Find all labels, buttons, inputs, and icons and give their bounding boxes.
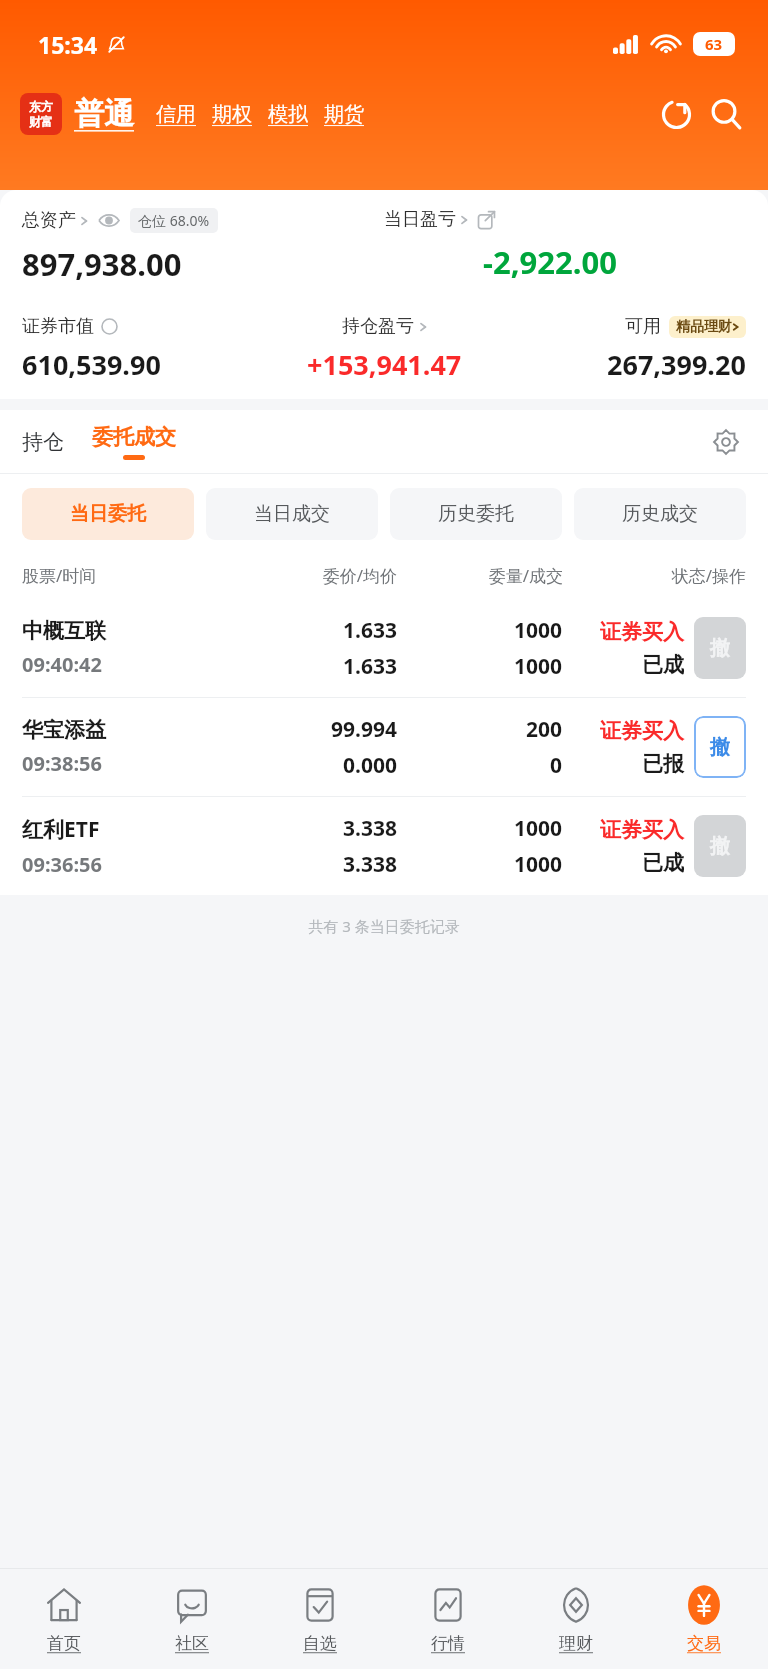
staticText: 华宝添益 [22,717,106,743]
staticText: 1000 [514,652,563,681]
button[interactable]: 自选 [256,1569,384,1669]
staticText: 15:34 [38,29,98,60]
staticText: +153,941.47 [307,346,462,383]
button[interactable]: 精品理财 [676,318,739,336]
button[interactable]: 委托成交 [92,424,176,460]
button[interactable]: 期货 [316,102,372,127]
staticText: 0 [550,751,563,780]
staticText: 1000 [514,814,563,843]
button[interactable]: 当日盈亏 [384,208,495,231]
button[interactable]: 中概互联 [22,599,746,697]
button[interactable]: 仓位 68.0% [138,211,210,230]
staticText: 行情 [431,1633,465,1654]
staticText: 持仓 [22,429,64,455]
staticText: 3.338 [343,814,397,843]
button[interactable]: 持仓 [22,423,64,461]
staticText: 社区 [175,1633,209,1654]
staticText: 理财 [559,1633,593,1654]
staticText: 09:36:56 [22,851,102,878]
button[interactable]: 历史成交 [574,488,746,540]
staticText: 3.338 [343,850,397,879]
staticText: 610,539.90 [22,346,161,383]
staticText: 东方 [29,99,53,114]
staticText: 信用 [156,102,196,127]
staticText: 证券买入 [600,817,684,843]
staticText: 0.000 [343,751,397,780]
staticText: 证券市值 [22,315,94,338]
staticText: 持仓盈亏 [342,315,414,338]
button[interactable]: 撤 [694,716,746,778]
staticText: 首页 [47,1633,81,1654]
staticText: 证券买入 [600,619,684,645]
button[interactable]: 行情 [384,1569,512,1669]
button[interactable]: 理财 [512,1569,640,1669]
button[interactable]: 撤 [694,815,746,877]
button[interactable]: 首页 [0,1569,128,1669]
staticText: 已报 [642,751,684,777]
staticText: 63 [705,34,723,54]
staticText: 历史委托 [438,502,514,526]
staticText: -2,922.00 [384,241,716,283]
staticText: 当日成交 [254,502,330,526]
staticText: 撤 [710,636,730,661]
staticText: 200 [526,715,563,744]
staticText: 委价/均价 [231,564,397,587]
staticText: 897,938.00 [22,243,182,285]
staticText: 状态/操作 [563,564,746,587]
button[interactable]: Refresh [654,92,698,136]
staticText: 当日盈亏 [384,208,456,231]
button[interactable]: 红利ETF [22,797,746,895]
button[interactable]: 华宝添益 [22,698,746,796]
button[interactable]: 模拟 [260,102,316,127]
button[interactable]: Settings [706,422,746,462]
staticText: 普通 [74,95,134,133]
staticText: 期货 [324,102,364,127]
button[interactable]: 总资产 [22,208,218,233]
staticText: 共有 3 条当日委托记录 [0,916,768,936]
staticText: 1000 [514,850,563,879]
staticText: 撤 [710,735,730,760]
button[interactable]: 持仓盈亏 [342,315,427,338]
staticText: 期权 [212,102,252,127]
button[interactable]: Search [704,92,748,136]
staticText: 财富 [29,114,53,129]
staticText: 仓位 68.0% [138,211,210,230]
button[interactable]: 历史委托 [390,488,562,540]
staticText: 当日委托 [70,502,146,526]
staticText: 交易 [687,1633,721,1654]
staticText: 09:38:56 [22,750,102,777]
staticText: 中概互联 [22,618,106,644]
staticText: 证券买入 [600,718,684,744]
staticText: 委量/成交 [397,564,563,587]
staticText: 股票/时间 [22,564,231,587]
staticText: 历史成交 [622,502,698,526]
staticText: 委托成交 [92,424,176,450]
staticText: 自选 [303,1633,337,1654]
staticText: 1000 [514,616,563,645]
staticText: 模拟 [268,102,308,127]
staticText: 已成 [642,850,684,876]
button[interactable]: 普通 [74,95,134,133]
staticText: 1.633 [343,652,397,681]
button[interactable]: 社区 [128,1569,256,1669]
staticText: 09:40:42 [22,651,102,678]
staticText: 已成 [642,652,684,678]
button[interactable]: 期权 [204,102,260,127]
button[interactable]: 信用 [148,102,204,127]
staticText: 撤 [710,834,730,859]
staticText: 可用 [625,315,661,338]
staticText: 红利ETF [22,815,100,844]
staticText: 267,399.20 [607,346,746,383]
staticText: 总资产 [22,209,76,232]
button[interactable]: 当日成交 [206,488,378,540]
staticText: 1.633 [343,616,397,645]
button[interactable]: 撤 [694,617,746,679]
button[interactable]: 当日委托 [22,488,194,540]
staticText: 精品理财 [676,318,732,336]
staticText: 99.994 [331,715,397,744]
button[interactable]: 交易 [640,1569,768,1669]
